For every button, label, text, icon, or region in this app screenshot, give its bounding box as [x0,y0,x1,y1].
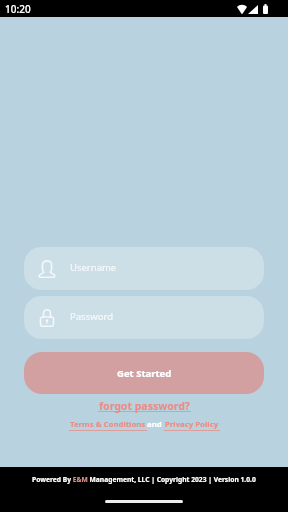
button[interactable]: forgot password? [98,399,191,413]
staticText: Privacy Policy [165,419,219,430]
staticText: forgot password? [99,399,190,413]
button[interactable]: Privacy Policy [164,419,220,430]
staticText: Username [70,261,117,274]
button[interactable]: Terms & Conditions [69,419,147,430]
button[interactable]: Password [24,296,264,339]
staticText: Terms & Conditions [70,419,146,430]
staticText: Password [70,310,113,323]
staticText: Powered By E&M Management, LLC | Copyrig… [32,475,256,484]
staticText: Get Started [117,367,172,380]
staticText: and [147,419,164,430]
button[interactable]: Username [24,247,264,290]
staticText: 10:20 [5,2,31,16]
button[interactable]: Get Started [24,352,264,394]
